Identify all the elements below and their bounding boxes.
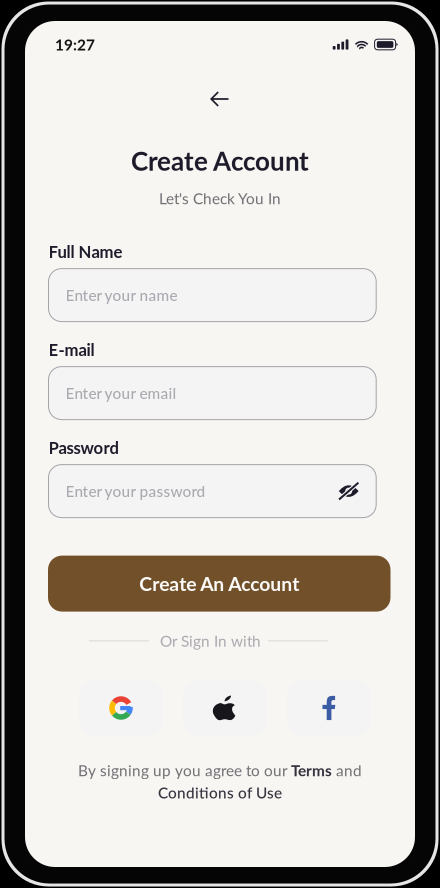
- button[interactable]: Back: [198, 79, 242, 119]
- staticText: Password: [48, 438, 118, 458]
- staticText: Conditions of Use: [158, 783, 282, 802]
- button[interactable]: Sign in with Apple: [183, 680, 267, 736]
- staticText: Enter your email: [65, 384, 176, 402]
- button[interactable]: Terms: [291, 761, 332, 779]
- button[interactable]: Create An Account: [48, 556, 390, 612]
- staticText: Or Sign In with: [160, 632, 261, 650]
- staticText: E-mail: [48, 340, 94, 360]
- button[interactable]: Sign in with Google: [79, 680, 163, 736]
- staticText: By signing up you agree to our: [78, 761, 291, 779]
- button[interactable]: Conditions of Use: [158, 783, 282, 802]
- staticText: Create An Account: [139, 572, 299, 595]
- staticText: Enter your password: [65, 482, 205, 500]
- button[interactable]: Sign in with Facebook: [287, 680, 371, 736]
- staticText: Full Name: [48, 242, 122, 262]
- staticText: and: [332, 761, 362, 779]
- button[interactable]: Show password: [338, 482, 359, 500]
- staticText: Enter your name: [65, 286, 177, 304]
- staticText: 19:27: [55, 35, 95, 54]
- staticText: Terms: [291, 761, 332, 779]
- staticText: Create Account: [131, 145, 309, 176]
- staticText: Let's Check You In: [159, 189, 281, 208]
